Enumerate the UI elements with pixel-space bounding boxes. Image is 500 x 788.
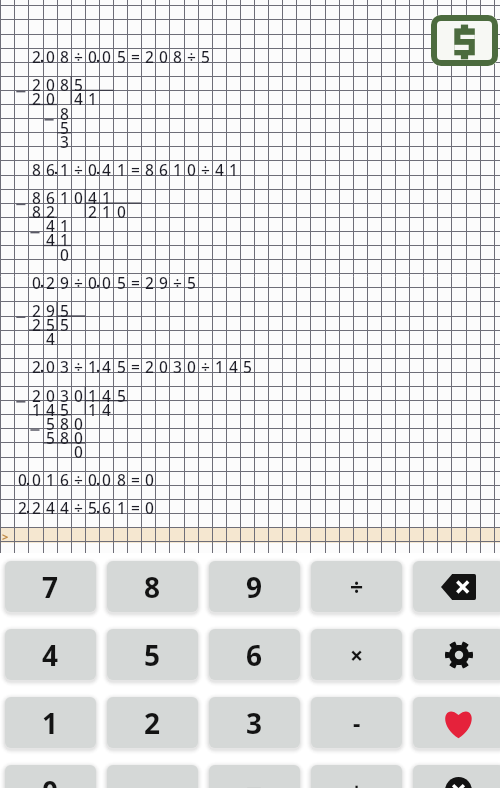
staticText: 0 xyxy=(187,356,196,377)
staticText: ÷ xyxy=(350,571,364,602)
staticText: 2 xyxy=(32,497,41,518)
staticText: 4 xyxy=(46,497,55,518)
staticText: 0 xyxy=(145,497,154,518)
staticText: ÷ xyxy=(74,46,83,67)
staticText: 0 xyxy=(145,469,154,490)
staticText: 0 xyxy=(159,356,168,377)
staticText: 5 xyxy=(46,314,55,335)
staticText: 0 xyxy=(60,244,69,265)
staticText: 1 xyxy=(117,497,126,518)
staticText: 5 xyxy=(144,636,161,674)
staticText: 0 xyxy=(88,469,97,490)
button[interactable]: 5 xyxy=(107,629,198,680)
staticText: 6 xyxy=(246,636,263,674)
button[interactable]: 6 xyxy=(209,629,300,680)
staticText: 5 xyxy=(117,385,126,406)
staticText: 0 xyxy=(88,46,97,67)
staticText: 6 xyxy=(46,187,55,208)
staticText: 8 xyxy=(144,568,161,606)
staticText: 0 xyxy=(74,385,83,406)
button[interactable]: heart xyxy=(413,697,500,748)
staticText: 0 xyxy=(159,46,168,67)
staticText: 0 xyxy=(32,272,41,293)
staticText: = xyxy=(131,497,140,518)
staticText: 8 xyxy=(60,413,69,434)
staticText: 0 xyxy=(46,74,55,95)
staticText: 5 xyxy=(187,272,196,293)
staticText: 2 xyxy=(32,314,41,335)
staticText: 1 xyxy=(173,159,182,180)
button[interactable]: 2 xyxy=(107,697,198,748)
button[interactable]: 3 xyxy=(209,697,300,748)
button[interactable]: back xyxy=(413,561,500,612)
button[interactable]: gear xyxy=(413,629,500,680)
staticText: ÷ xyxy=(74,469,83,490)
button[interactable]: 4 xyxy=(5,629,96,680)
button[interactable]: 9 xyxy=(209,561,300,612)
button[interactable]: × xyxy=(311,629,402,680)
staticText: ÷ xyxy=(201,356,210,377)
staticText: 5 xyxy=(74,74,83,95)
button[interactable]: 8 xyxy=(107,561,198,612)
staticText: 7 xyxy=(42,568,59,606)
staticText: 5 xyxy=(60,117,69,138)
staticText: 9 xyxy=(46,300,55,321)
staticText: 8 xyxy=(60,103,69,124)
staticText: = xyxy=(131,159,140,180)
button[interactable]: 1 xyxy=(5,697,96,748)
staticText: 4 xyxy=(229,356,238,377)
staticText: 1 xyxy=(102,201,111,222)
staticText: 3 xyxy=(246,704,263,742)
staticText: 8 xyxy=(117,469,126,490)
staticText: 0 xyxy=(117,201,126,222)
staticText: 0 xyxy=(46,46,55,67)
staticText: 2 xyxy=(32,46,41,67)
staticText: 5 xyxy=(60,399,69,420)
staticText: 4 xyxy=(88,187,97,208)
staticText: 0 xyxy=(42,772,59,788)
staticText: 8 xyxy=(173,46,182,67)
staticText: 8 xyxy=(145,159,154,180)
staticText: ÷ xyxy=(201,159,210,180)
staticText: 9 xyxy=(246,568,263,606)
staticText: 5 xyxy=(46,413,55,434)
staticText: 1 xyxy=(60,215,69,236)
staticText: 1 xyxy=(60,159,69,180)
staticText: 5 xyxy=(117,272,126,293)
button[interactable]: ÷ xyxy=(311,561,402,612)
staticText: 2 xyxy=(145,356,154,377)
staticText: 5 xyxy=(88,497,97,518)
button[interactable]: - xyxy=(311,697,402,748)
staticText: 4 xyxy=(46,229,55,250)
staticText: 0 xyxy=(88,272,97,293)
staticText: 4 xyxy=(102,356,111,377)
staticText: ÷ xyxy=(173,272,182,293)
staticText: 0 xyxy=(18,469,27,490)
staticText: 1 xyxy=(88,356,97,377)
staticText: 6 xyxy=(60,469,69,490)
staticText: 1 xyxy=(42,704,59,742)
button[interactable] xyxy=(0,528,500,543)
staticText: 0 xyxy=(102,272,111,293)
staticText: 0 xyxy=(102,469,111,490)
staticText: = xyxy=(131,46,140,67)
button[interactable]: 0 xyxy=(5,765,96,788)
staticText: 8 xyxy=(60,46,69,67)
button[interactable]: 7 xyxy=(5,561,96,612)
staticText: 6 xyxy=(159,159,168,180)
staticText: 1 xyxy=(60,229,69,250)
button[interactable]: Money xyxy=(431,15,498,66)
staticText: 5 xyxy=(117,46,126,67)
staticText: 4 xyxy=(102,385,111,406)
staticText: 9 xyxy=(159,272,168,293)
staticText: 4 xyxy=(46,399,55,420)
staticText: ÷ xyxy=(74,159,83,180)
staticText: 6 xyxy=(102,497,111,518)
staticText: 4 xyxy=(102,159,111,180)
staticText: × xyxy=(350,639,364,670)
button[interactable]: + xyxy=(311,765,402,788)
button[interactable]: circlex xyxy=(413,765,500,788)
